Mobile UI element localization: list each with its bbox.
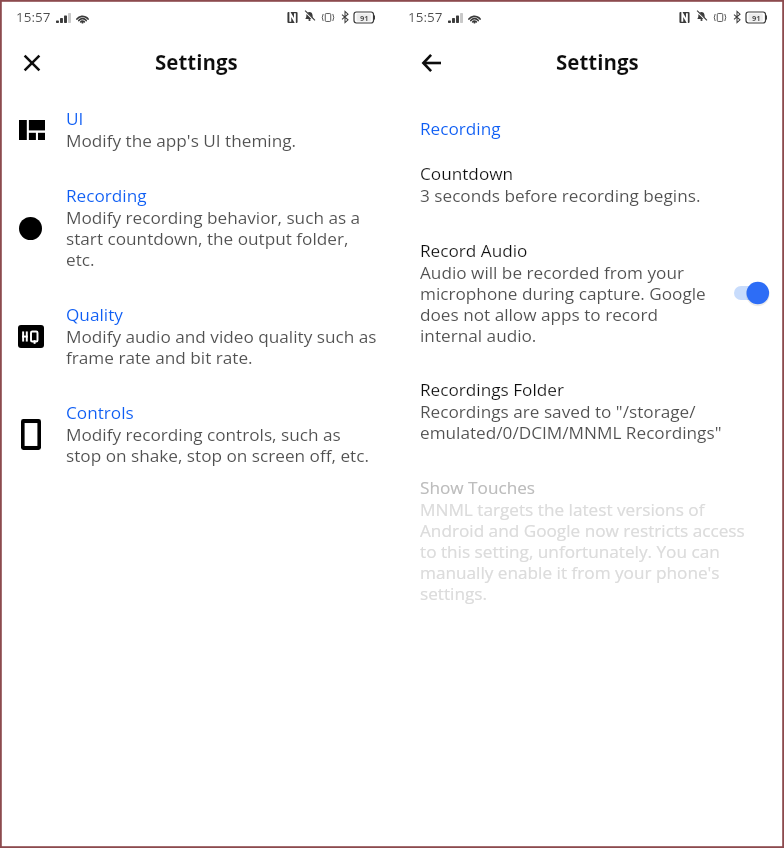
staticText: Audio will be recorded from your microph… bbox=[420, 262, 716, 346]
staticText: 91 bbox=[752, 13, 761, 23]
staticText: Record Audio bbox=[420, 239, 528, 262]
button[interactable]: Quality bbox=[0, 303, 392, 368]
staticText: Recording bbox=[66, 184, 147, 207]
staticText: Controls bbox=[66, 401, 134, 424]
staticText: 91 bbox=[360, 13, 369, 23]
button[interactable]: Close bbox=[13, 44, 50, 81]
button[interactable]: Show Touches bbox=[392, 476, 784, 604]
staticText: Modify recording controls, such as stop … bbox=[66, 424, 378, 466]
staticText: MNML targets the latest versions of Andr… bbox=[420, 499, 756, 604]
staticText: 15:57 bbox=[16, 8, 51, 26]
button[interactable]: UI bbox=[0, 107, 392, 151]
button[interactable]: Countdown bbox=[392, 162, 784, 206]
staticText: Recordings are saved to "/storage/emulat… bbox=[420, 401, 756, 443]
staticText: Show Touches bbox=[420, 476, 536, 499]
staticText: Settings bbox=[155, 48, 238, 76]
staticText: Modify recording behavior, such as a sta… bbox=[66, 207, 378, 270]
staticText: UI bbox=[66, 107, 84, 130]
staticText: Settings bbox=[556, 48, 639, 76]
staticText: Recording bbox=[420, 117, 501, 140]
staticText: Modify audio and video quality such as f… bbox=[66, 326, 378, 368]
button[interactable]: Recording bbox=[0, 184, 392, 270]
staticText: 3 seconds before recording begins. bbox=[420, 185, 756, 206]
staticText: Countdown bbox=[420, 162, 514, 185]
staticText: Recordings Folder bbox=[420, 378, 564, 401]
button[interactable]: Record Audio bbox=[392, 239, 784, 346]
staticText: 15:57 bbox=[408, 8, 443, 26]
button[interactable]: Back bbox=[413, 44, 450, 81]
staticText: Quality bbox=[66, 303, 123, 326]
button[interactable]: Controls bbox=[0, 401, 392, 466]
button[interactable]: Record Audio toggle bbox=[726, 276, 772, 310]
button[interactable]: Recordings Folder bbox=[392, 378, 784, 443]
staticText: Modify the app's UI theming. bbox=[66, 130, 378, 151]
